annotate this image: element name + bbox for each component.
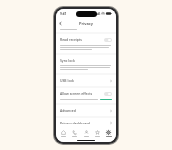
button[interactable]: Read receipts [56, 34, 116, 45]
button[interactable]: Calls [69, 130, 80, 137]
button[interactable]: Home [58, 130, 69, 137]
button[interactable]: Privacy dashboard [56, 118, 116, 127]
button[interactable]: Back [56, 19, 64, 27]
staticText: 9:41 [60, 12, 67, 16]
button[interactable]: Learn more [100, 99, 112, 100]
staticText: Sync lock [60, 58, 75, 63]
staticText: Privacy dashboard [60, 121, 110, 124]
button[interactable]: Allow screen effects [56, 88, 116, 99]
staticText: Privacy [79, 21, 94, 26]
button[interactable]: Saved [92, 130, 103, 137]
button[interactable]: Toggle [104, 38, 112, 42]
button[interactable]: Toggle [104, 92, 112, 96]
staticText: Advanced [60, 108, 110, 113]
button[interactable]: Settings [103, 130, 114, 137]
staticText: USB lock [60, 78, 110, 83]
staticText: Allow screen effects [60, 91, 104, 96]
staticText: Read receipts [60, 37, 82, 42]
button[interactable]: USB lock [56, 75, 116, 86]
button[interactable]: Contacts [81, 130, 92, 137]
button[interactable]: Advanced [56, 105, 116, 116]
